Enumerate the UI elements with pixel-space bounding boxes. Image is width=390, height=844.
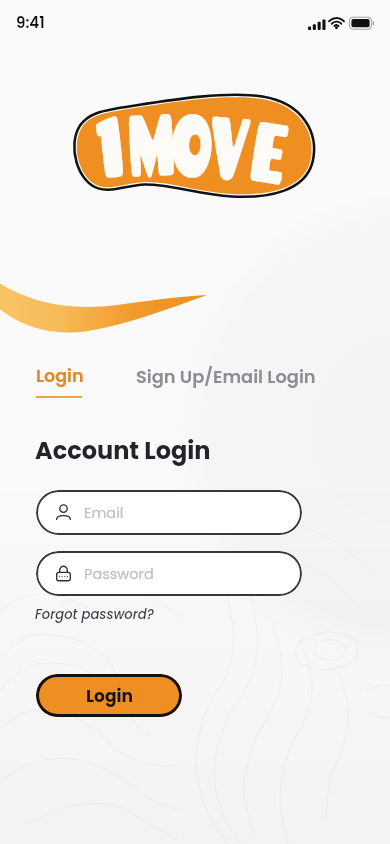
staticText: Login [36, 364, 84, 389]
other: Status icons [308, 17, 374, 30]
button[interactable]: Login [36, 364, 84, 398]
staticText: 9:41 [16, 12, 45, 33]
staticText: Login [86, 684, 133, 708]
staticText: Password [84, 564, 154, 584]
button[interactable]: Password [36, 551, 302, 596]
button[interactable]: Sign Up/Email Login [136, 364, 316, 389]
button[interactable]: Email [36, 490, 302, 535]
staticText: Account Login [35, 434, 211, 468]
button[interactable]: Login [36, 674, 182, 717]
staticText: Email [84, 503, 124, 523]
button[interactable]: Forgot password? [35, 605, 154, 623]
